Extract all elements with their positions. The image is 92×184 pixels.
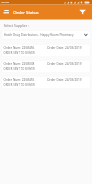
staticText: Order Num: 2268038	[3, 61, 34, 66]
staticText: ORDER SENT TO SERVER	[3, 51, 35, 55]
staticText: Order Status	[13, 9, 39, 15]
button[interactable]: Filter	[77, 6, 88, 17]
staticText: Order Date: 24/03/2019	[47, 45, 82, 50]
staticText: Order Date: 24/03/2019	[47, 77, 82, 82]
staticText: Order Num: 2268455	[3, 77, 34, 82]
staticText: Select Supplier :	[4, 23, 29, 28]
staticText: Order Date: 24/03/2019	[47, 61, 82, 66]
button[interactable]: Order Num: 2268038	[1, 60, 90, 73]
button[interactable]: Hatch Drug Distributors - Happy Room Pha…	[1, 30, 90, 40]
button[interactable]: Order Num: 2268455	[1, 76, 90, 89]
button[interactable]: Navigation menu	[1, 6, 12, 17]
staticText: Order Num: 2268456	[3, 45, 34, 50]
staticText: Hatch Drug Distributors - Happy Room Pha…	[4, 33, 74, 37]
staticText: ORDER SENT TO SERVER	[3, 83, 35, 87]
button[interactable]: Order Num: 2268456	[1, 44, 90, 57]
staticText: ORDER SENT TO SERVER	[3, 67, 35, 71]
staticText: 5:04 PM	[1, 1, 9, 4]
